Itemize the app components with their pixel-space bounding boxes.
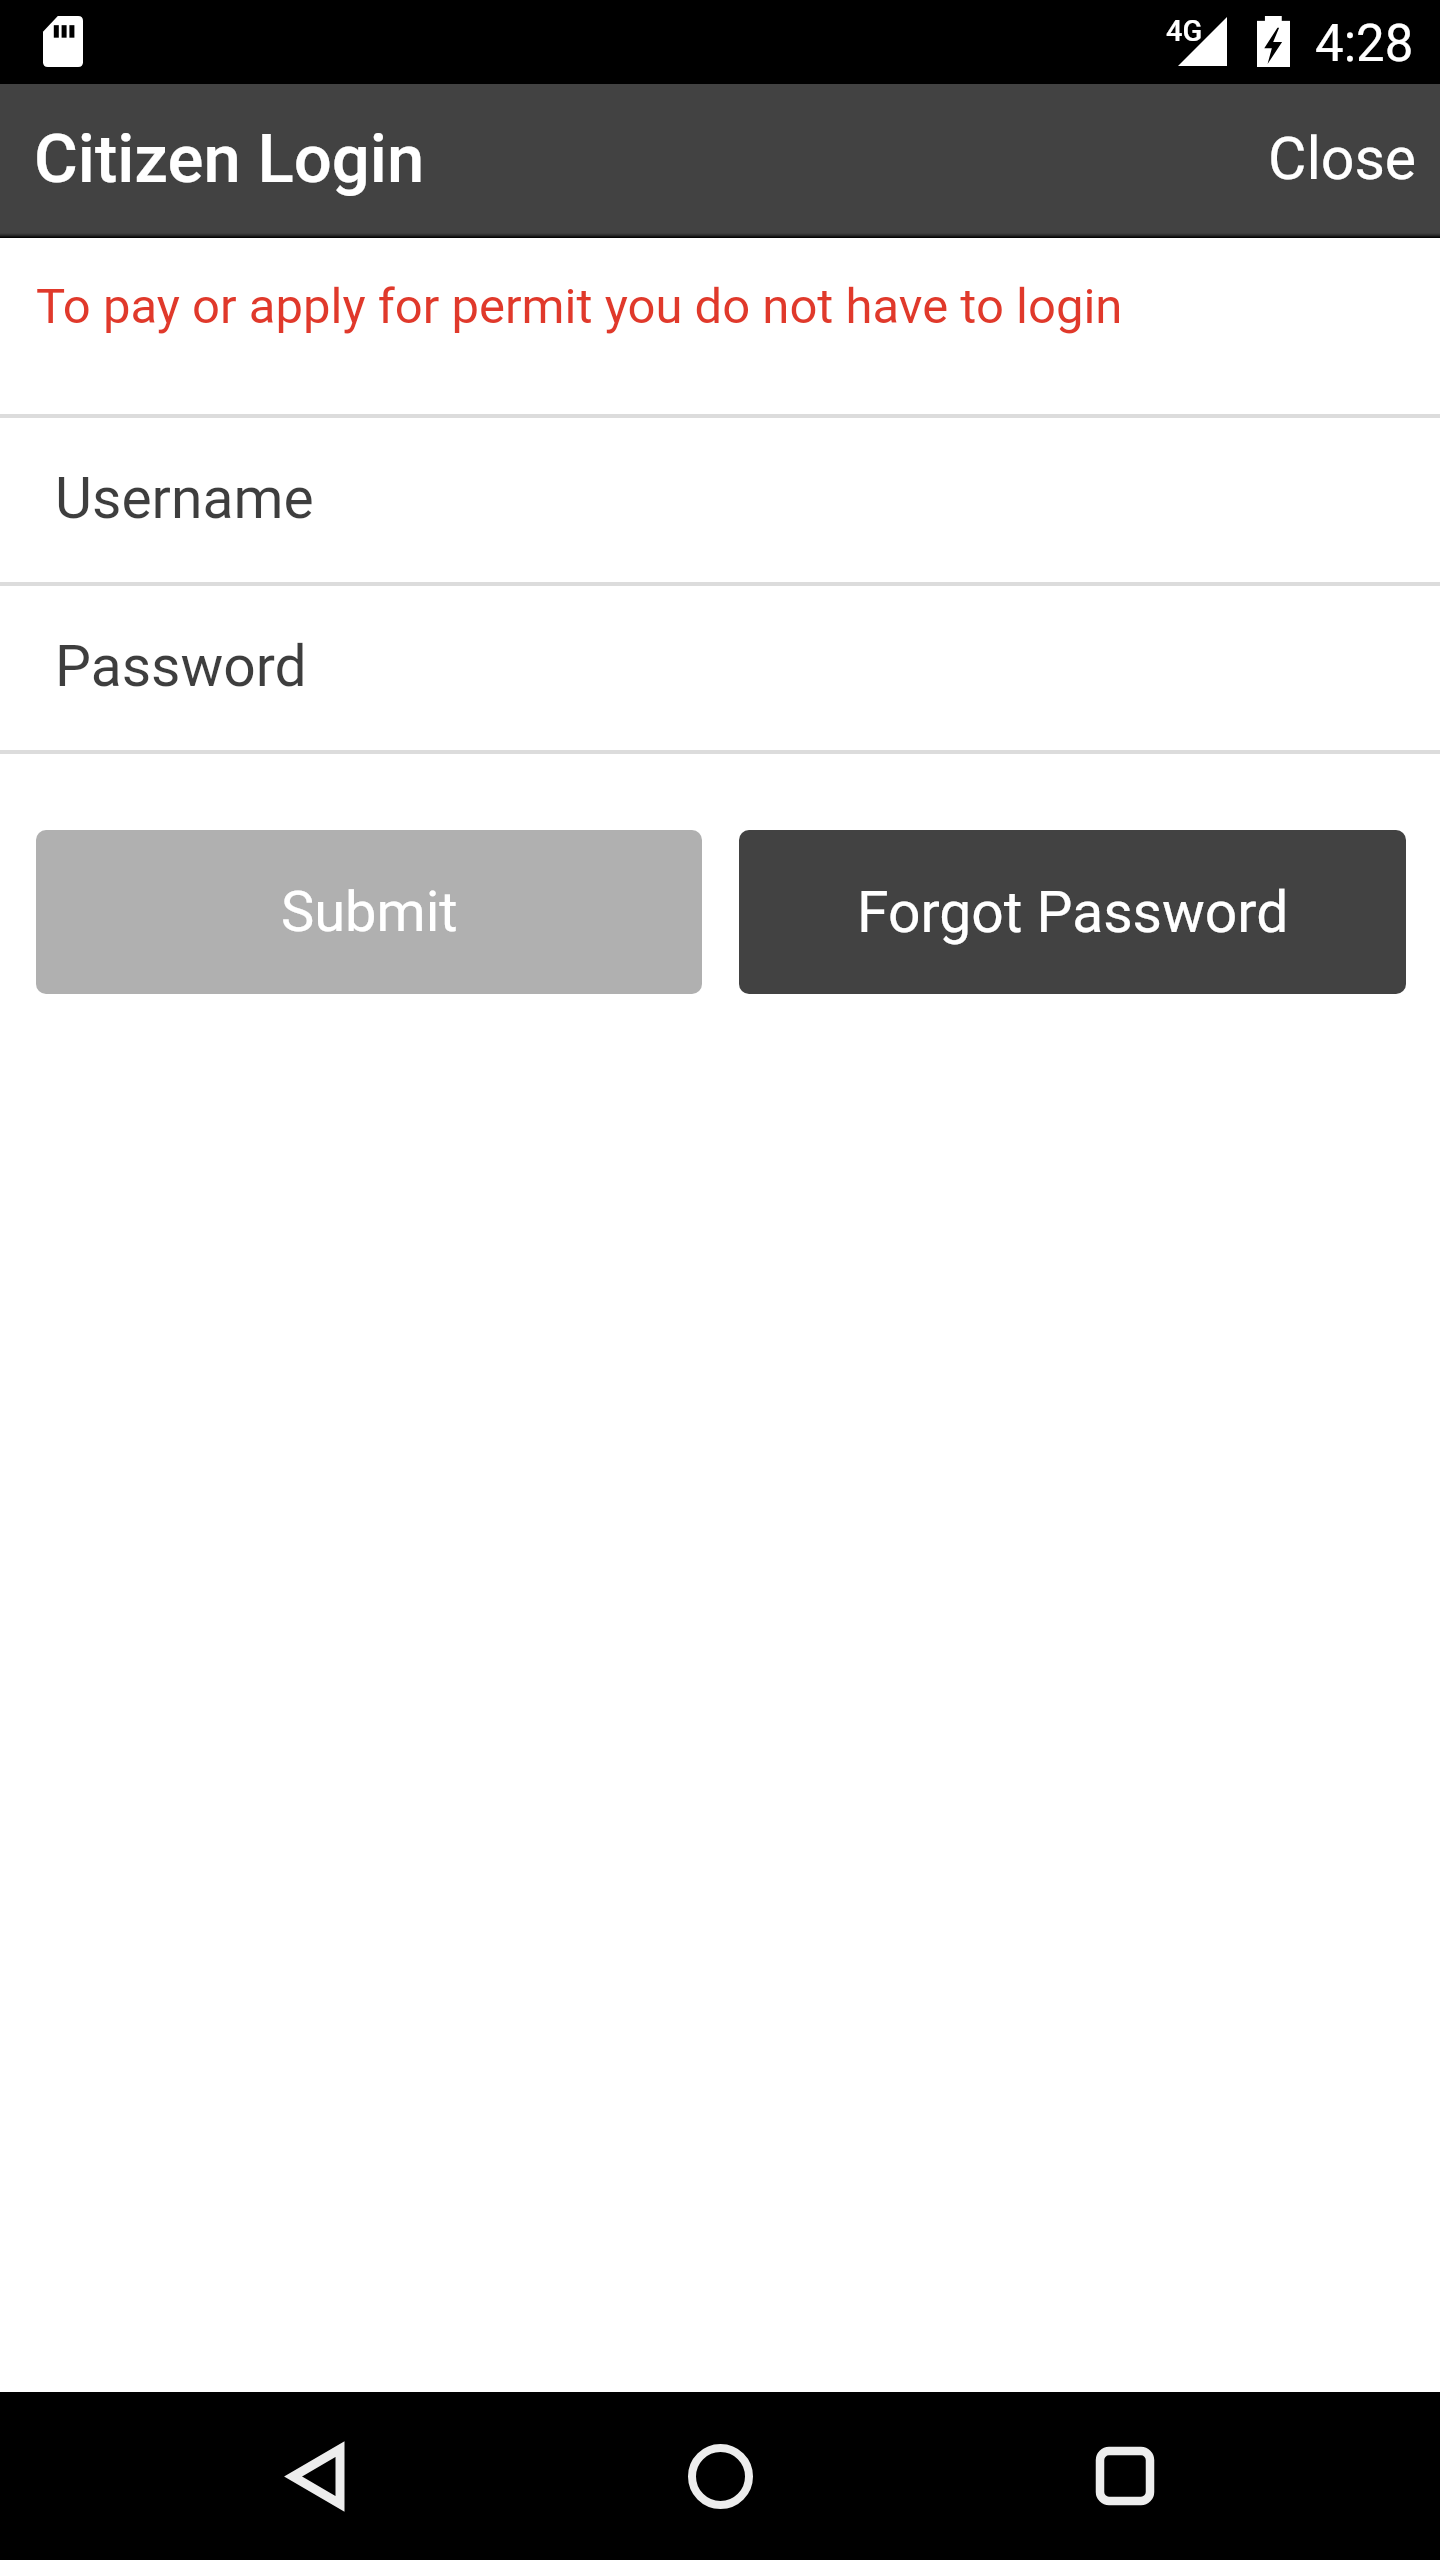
- staticText: Close: [1268, 124, 1417, 193]
- button[interactable]: Back: [196, 2392, 436, 2560]
- staticText: Citizen Login: [34, 120, 425, 199]
- button[interactable]: Submit: [36, 830, 702, 994]
- button[interactable]: Forgot Password: [739, 830, 1406, 994]
- staticText: Forgot Password: [857, 879, 1289, 946]
- button[interactable]: Password: [0, 586, 1440, 750]
- button[interactable]: Username: [0, 418, 1440, 582]
- staticText: 4:28: [1315, 14, 1414, 74]
- button[interactable]: Close: [1268, 124, 1440, 199]
- button[interactable]: Recents: [1005, 2392, 1245, 2560]
- staticText: Password: [55, 633, 307, 700]
- button[interactable]: Home: [600, 2392, 840, 2560]
- staticText: To pay or apply for permit you do not ha…: [36, 278, 1123, 335]
- staticText: Submit: [281, 879, 458, 945]
- staticText: Username: [55, 465, 314, 532]
- staticText: 4G: [1166, 14, 1203, 48]
